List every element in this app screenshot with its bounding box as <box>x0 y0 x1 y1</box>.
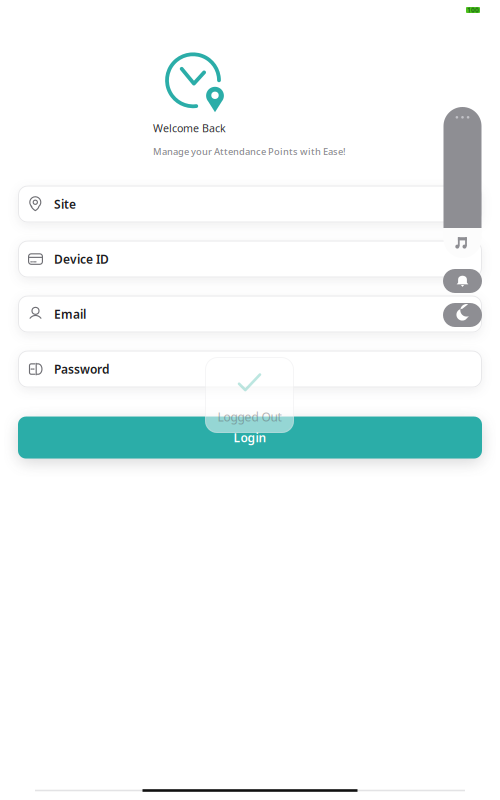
button[interactable]: Device ID <box>18 241 482 278</box>
staticText: Login <box>233 430 266 445</box>
button[interactable]: Site <box>18 186 482 223</box>
staticText: Email <box>54 306 86 322</box>
staticText: 100 <box>467 6 479 14</box>
button[interactable]: Ring mode <box>443 269 482 293</box>
staticText: Password <box>54 361 110 377</box>
button[interactable]: Volume <box>443 107 481 258</box>
staticText: Manage your Attendance Points with Ease! <box>153 145 346 158</box>
button[interactable]: Email <box>18 296 482 333</box>
button[interactable]: Do Not Disturb <box>443 303 482 327</box>
button[interactable]: Password <box>18 351 482 388</box>
button[interactable]: Login <box>18 417 482 459</box>
staticText: Site <box>54 196 76 212</box>
staticText: Welcome Back <box>153 121 226 135</box>
staticText: Logged Out <box>217 409 281 425</box>
staticText: Device ID <box>54 251 109 267</box>
